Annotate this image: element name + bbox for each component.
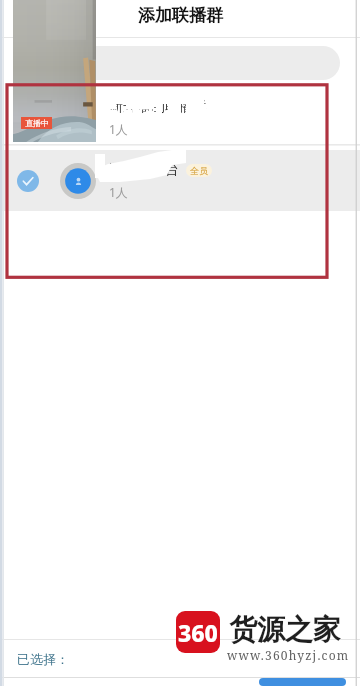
staticText: 360 bbox=[178, 617, 218, 648]
button[interactable]: 已选择： bbox=[0, 640, 360, 677]
staticText: www.360hyzj.com bbox=[227, 647, 350, 663]
staticText: 直播中 bbox=[25, 118, 49, 128]
staticText: 1人 bbox=[109, 121, 128, 137]
staticText: 新开播的联播群 bbox=[109, 98, 207, 116]
button[interactable]: Select group bbox=[0, 86, 360, 148]
button[interactable]: Select group bbox=[17, 170, 39, 192]
staticText: 测试联播台 bbox=[109, 161, 179, 179]
staticText: 全员 bbox=[190, 165, 208, 176]
staticText: 1人 bbox=[109, 184, 128, 200]
button[interactable] bbox=[20, 46, 340, 80]
button[interactable]: Select group bbox=[17, 106, 39, 128]
button[interactable] bbox=[259, 678, 346, 686]
staticText: 货源之家 bbox=[229, 612, 341, 647]
staticText: 已选择： bbox=[17, 651, 69, 667]
button[interactable]: Select group bbox=[0, 150, 360, 211]
staticText: 添加联播群 bbox=[138, 5, 223, 26]
